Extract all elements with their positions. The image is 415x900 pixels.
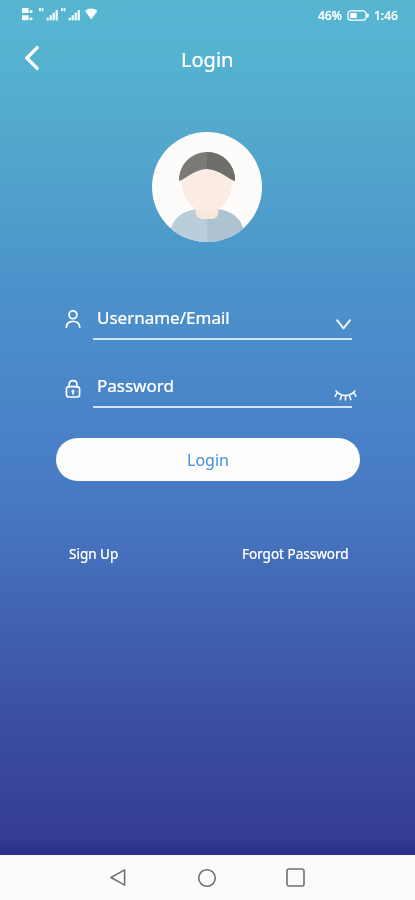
staticText: 1:46: [374, 7, 398, 23]
staticText: Login: [181, 46, 234, 73]
button[interactable]: Username/Email: [56, 306, 360, 350]
staticText: Sign Up: [69, 545, 119, 563]
staticText: Password: [97, 374, 174, 397]
button[interactable]: Password: [56, 374, 360, 418]
button[interactable]: Profile photo: [152, 132, 262, 242]
button[interactable]: Login: [56, 438, 360, 481]
button[interactable]: Recent apps: [271, 855, 319, 900]
staticText: Username/Email: [97, 306, 230, 329]
button[interactable]: Back: [94, 855, 142, 900]
button[interactable]: Home: [183, 855, 231, 900]
button[interactable]: Sign Up: [69, 545, 119, 563]
button[interactable]: Back: [8, 34, 56, 82]
button[interactable]: Forgot Password: [242, 545, 349, 563]
staticText: Forgot Password: [242, 545, 349, 563]
staticText: 46%: [318, 7, 342, 23]
staticText: Login: [187, 449, 229, 471]
